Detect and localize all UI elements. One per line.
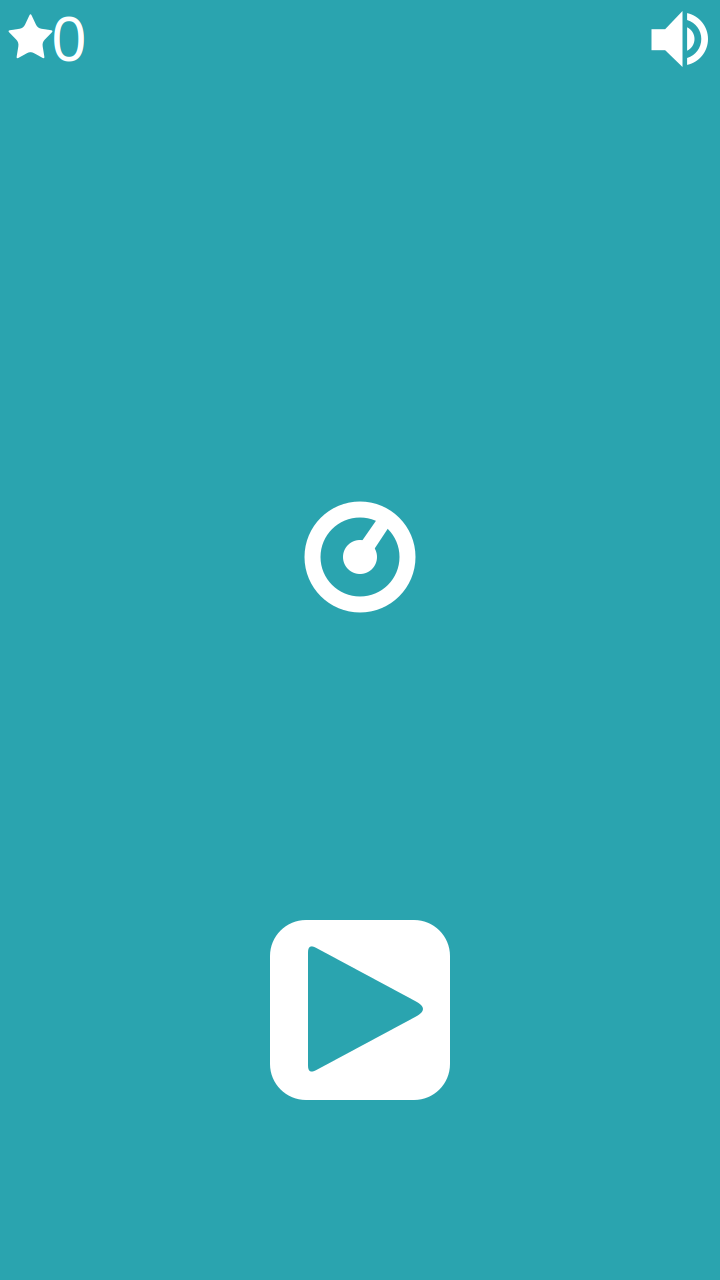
button[interactable]: 0 bbox=[0, 0, 94, 66]
button[interactable]: Sound bbox=[642, 2, 719, 76]
staticText: 0 bbox=[51, 0, 87, 78]
button[interactable]: Play bbox=[270, 920, 450, 1100]
